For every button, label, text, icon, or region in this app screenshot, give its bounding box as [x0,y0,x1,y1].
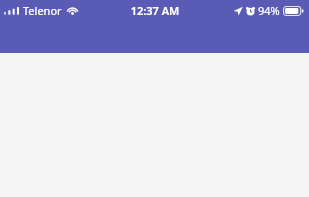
staticText: 94% [258,3,280,18]
staticText: Telenor [23,3,62,18]
other: Alarm set [246,6,255,16]
other: Battery 94 percent [283,6,304,16]
other: Wi-Fi [66,5,79,16]
staticText: 12:37 AM [120,3,190,18]
other: Location services active [233,6,243,16]
other: Cellular signal [4,5,19,17]
